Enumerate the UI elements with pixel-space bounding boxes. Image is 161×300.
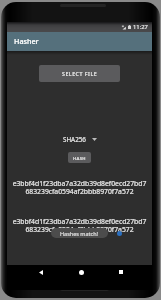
button[interactable]: Home (67, 265, 95, 279)
button[interactable]: SELECT FILE (39, 65, 120, 82)
button[interactable]: HASH (68, 152, 91, 163)
staticText: SHA256 (63, 135, 86, 144)
button[interactable]: SHA256 (63, 135, 97, 144)
staticText: e3bbf4d1f23dba7a32db39d8ef0ecd27bd768323… (11, 179, 148, 196)
staticText: Hashes match! (60, 230, 99, 237)
staticText: HASH (73, 155, 86, 161)
button[interactable]: Recent apps (107, 265, 135, 279)
staticText: 11:27 (133, 23, 148, 31)
staticText: Hasher (14, 36, 39, 46)
staticText: e3bbf4d1f23dba7a32db39d8ef0ecd27bd768323… (11, 217, 148, 234)
button[interactable]: Back (27, 265, 55, 279)
staticText: SELECT FILE (62, 70, 98, 77)
